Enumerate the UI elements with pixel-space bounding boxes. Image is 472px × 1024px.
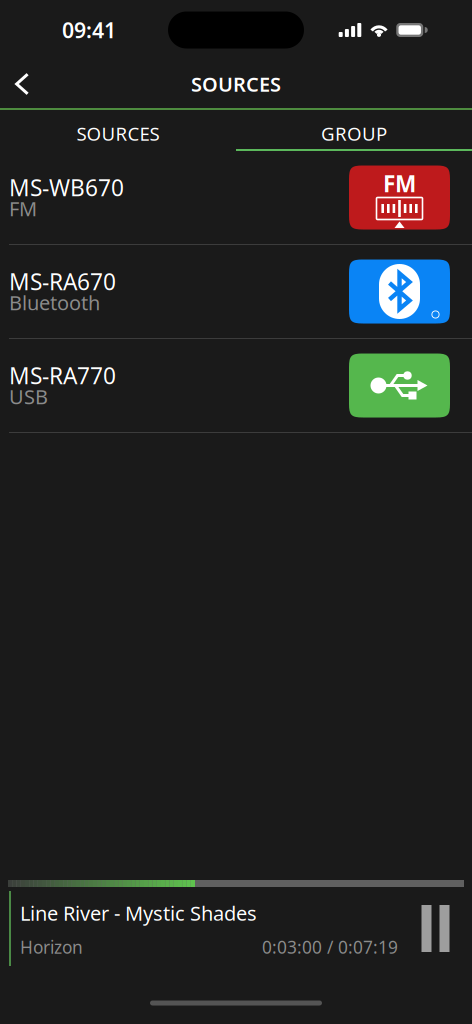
staticText: MS-RA770 — [9, 360, 116, 390]
button[interactable]: MS-RA770 — [0, 339, 472, 433]
button[interactable]: GROUP — [236, 110, 472, 151]
button[interactable]: Back — [0, 60, 49, 108]
staticText: 0:03:00 / 0:07:19 — [262, 935, 398, 958]
staticText: Bluetooth — [9, 289, 100, 316]
staticText: FM — [383, 168, 416, 198]
staticText: 09:41 — [62, 16, 116, 44]
staticText: SOURCES — [191, 71, 281, 97]
staticText: Horizon — [20, 935, 83, 958]
button[interactable]: MS-RA670 — [0, 245, 472, 339]
button[interactable]: MS-WB670 — [0, 151, 472, 245]
staticText: FM — [9, 195, 37, 222]
staticText: MS-WB670 — [9, 172, 124, 202]
staticText: Line River - Mystic Shades — [20, 900, 257, 926]
staticText: USB — [9, 383, 48, 410]
staticText: MS-RA670 — [9, 266, 116, 296]
staticText: GROUP — [321, 121, 387, 146]
button[interactable]: SOURCES — [0, 110, 236, 151]
staticText: SOURCES — [76, 121, 159, 146]
button[interactable]: Pause — [399, 891, 472, 966]
